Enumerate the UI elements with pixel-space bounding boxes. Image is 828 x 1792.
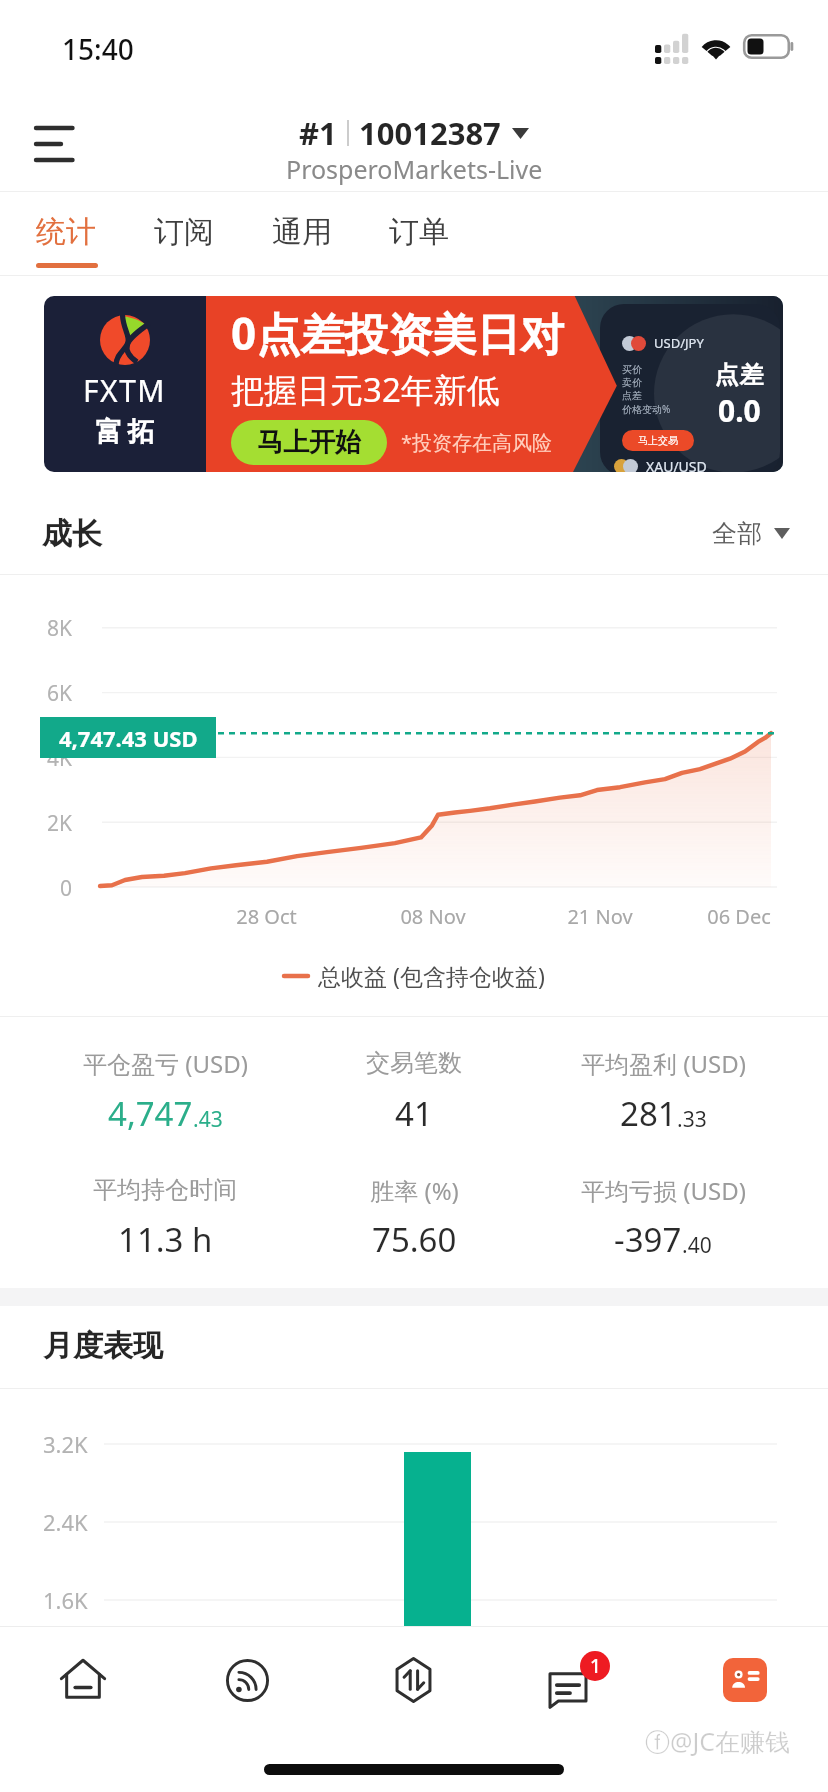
staticText: 全部 xyxy=(712,518,762,549)
button[interactable]: Messages xyxy=(496,1626,662,1734)
staticText: 2.4K xyxy=(43,1507,88,1537)
staticText: -397 xyxy=(614,1217,682,1262)
button[interactable]: Signals xyxy=(165,1626,330,1734)
button[interactable]: 统计 xyxy=(8,196,124,275)
staticText: 2K xyxy=(47,809,73,838)
staticText: 0点差投资美日对 xyxy=(231,303,565,363)
staticText: 3.2K xyxy=(43,1429,88,1459)
staticText: *投资存在高风险 xyxy=(401,429,553,456)
staticText: 21 Nov xyxy=(567,903,633,930)
staticText: XAU/USD xyxy=(646,457,707,472)
staticText: ProsperoMarkets-Live xyxy=(286,152,543,186)
staticText: 75.60 xyxy=(372,1217,457,1262)
staticText: 统计 xyxy=(36,213,96,251)
staticText: .33 xyxy=(677,1105,707,1134)
staticText: 11.3 h xyxy=(118,1217,213,1262)
staticText: 41 xyxy=(395,1091,433,1136)
staticText: FXTM xyxy=(83,370,167,411)
staticText: 08 Nov xyxy=(400,903,466,930)
staticText: 4,747 xyxy=(108,1091,193,1136)
staticText: 通用 xyxy=(272,213,332,251)
staticText: #1 xyxy=(299,112,337,154)
button[interactable]: Trade xyxy=(330,1626,496,1734)
button[interactable]: FXTM advertisement xyxy=(44,296,783,472)
staticText: 点差 xyxy=(714,360,764,390)
staticText: .40 xyxy=(682,1231,712,1260)
staticText: 15:40 xyxy=(62,30,134,68)
staticText: 订单 xyxy=(389,213,449,251)
button[interactable]: Home xyxy=(0,1626,165,1734)
staticText: 胜率 (%) xyxy=(370,1174,459,1207)
staticText: 4,747.43 USD xyxy=(59,723,198,753)
staticText: 1 xyxy=(590,1653,601,1679)
button[interactable]: #1 xyxy=(0,112,828,154)
staticText: 月度表现 xyxy=(43,1327,163,1365)
staticText: 平仓盈亏 (USD) xyxy=(83,1047,248,1080)
staticText: 平均持仓时间 xyxy=(93,1175,237,1205)
staticText: 成长 xyxy=(42,515,102,553)
staticText: 281 xyxy=(620,1091,677,1136)
staticText: 0 xyxy=(60,874,73,903)
staticText: 1.6K xyxy=(43,1585,88,1615)
staticText: 10012387 xyxy=(359,112,501,154)
staticText: 价格变动% xyxy=(622,402,671,416)
button[interactable]: 全部 xyxy=(696,505,815,561)
staticText: 订阅 xyxy=(154,213,214,251)
staticText: 富拓 xyxy=(93,415,157,449)
button[interactable]: Profile xyxy=(662,1626,828,1734)
staticText: ⓕ@JC在赚钱 xyxy=(645,1724,791,1758)
button[interactable]: 订单 xyxy=(361,196,477,275)
staticText: 平均盈利 (USD) xyxy=(581,1047,746,1080)
staticText: 4K xyxy=(47,744,73,773)
staticText: .43 xyxy=(193,1105,223,1134)
staticText: 6K xyxy=(47,679,73,708)
staticText: 28 Oct xyxy=(236,903,297,930)
button[interactable]: 通用 xyxy=(244,196,360,275)
staticText: 马上开始 xyxy=(257,426,361,459)
staticText: 买价 xyxy=(622,363,642,376)
button[interactable]: 订阅 xyxy=(126,196,242,275)
staticText: 平均亏损 (USD) xyxy=(581,1174,746,1207)
staticText: 卖价 xyxy=(622,376,642,389)
staticText: 点差 xyxy=(622,389,642,402)
staticText: 06 Dec xyxy=(707,903,771,930)
staticText: 把握日元32年新低 xyxy=(231,367,500,412)
staticText: USD/JPY xyxy=(654,334,704,352)
staticText: 8K xyxy=(47,614,73,643)
staticText: 马上交易 xyxy=(638,434,678,447)
button[interactable]: Menu xyxy=(10,112,98,180)
staticText: 总收益 (包含持仓收益) xyxy=(318,960,545,991)
staticText: 0.0 xyxy=(718,390,761,431)
staticText: 交易笔数 xyxy=(366,1048,462,1078)
